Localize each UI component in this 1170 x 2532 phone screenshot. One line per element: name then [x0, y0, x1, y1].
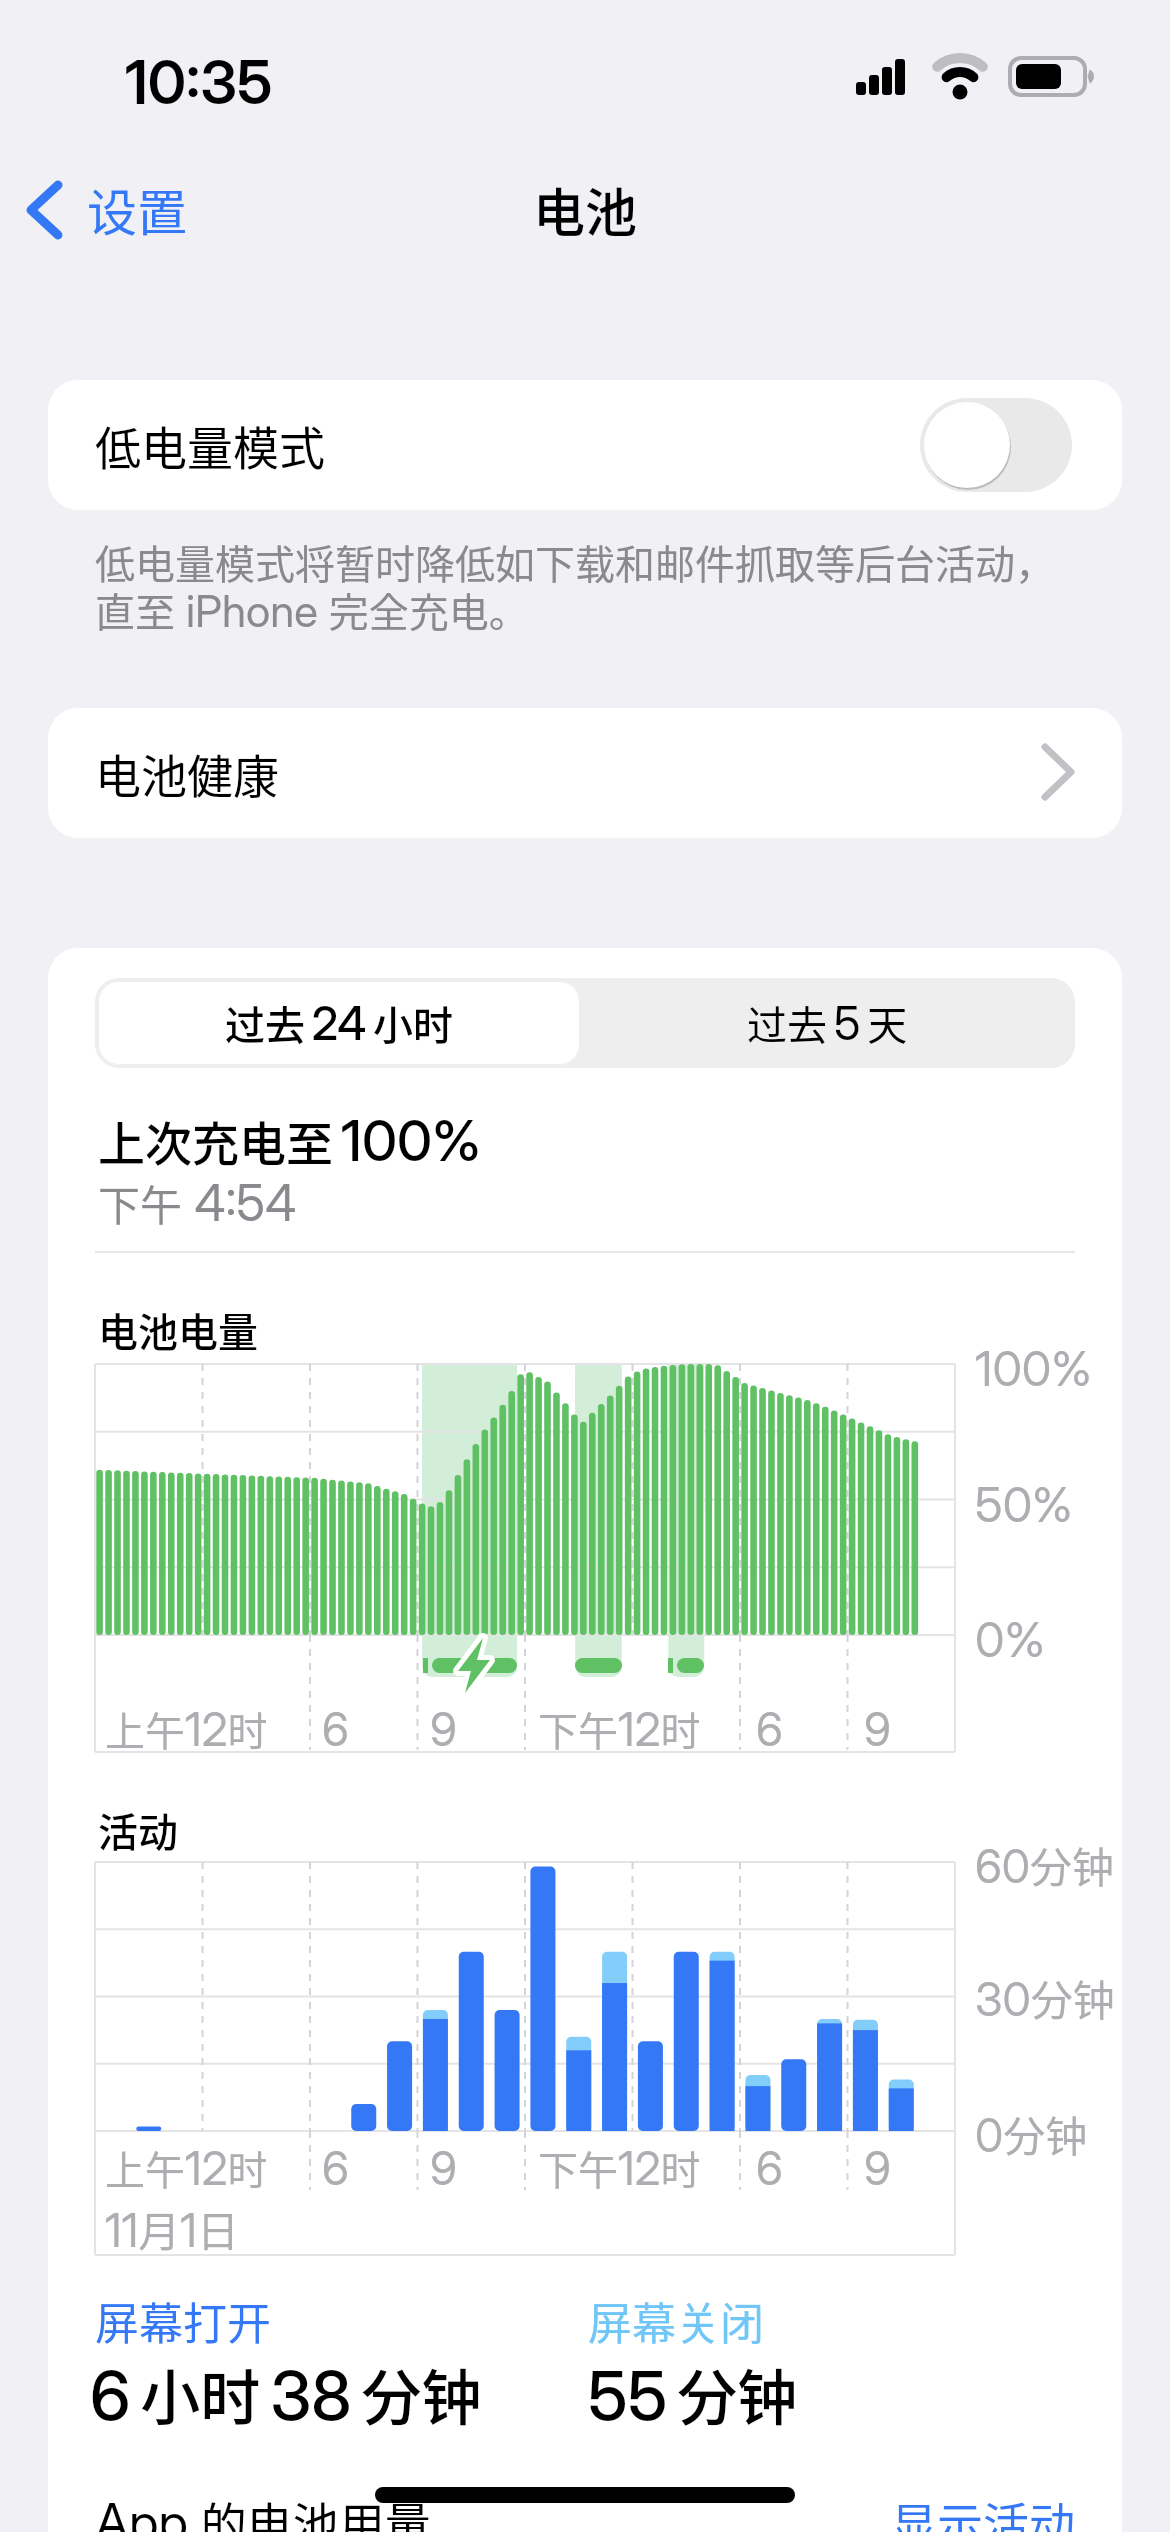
staticText: 下午 4:54 [98, 1172, 297, 1233]
staticText: 6 [756, 2140, 783, 2196]
staticText: 9 [430, 1701, 457, 1757]
button[interactable]: 显示活动 [95, 2486, 1075, 2532]
staticText: 上午12时 [105, 1700, 268, 1758]
staticText: 30分钟 [975, 1967, 1115, 2028]
staticText: 10:35 [125, 46, 273, 106]
button[interactable]: 设置 [20, 172, 210, 244]
button[interactable]: 电池健康 [48, 708, 1122, 838]
staticText: 显示活动 [891, 2488, 1075, 2532]
staticText: 下午12时 [538, 2139, 701, 2197]
staticText: 下午12时 [538, 1700, 701, 1758]
staticText: 电池 [533, 172, 638, 244]
staticText: 9 [430, 2140, 457, 2196]
staticText: 6 [756, 1701, 783, 1757]
staticText: 0% [975, 1610, 1045, 1668]
staticText: 活动 [98, 1801, 178, 1859]
staticText: 6 小时 38 分钟 [90, 2350, 482, 2430]
staticText: 过去 5 天 [747, 994, 908, 1052]
staticText: 50% [975, 1475, 1073, 1533]
staticText: 100% [975, 1339, 1092, 1397]
staticText: 低电量模式将暂时降低如下载和邮件抓取等后台活动， 直至 iPhone 完全充电。 [95, 533, 1055, 639]
staticText: 电池电量 [98, 1301, 258, 1359]
staticText: 11月1日 [105, 2198, 239, 2259]
staticText: 6 [322, 2140, 349, 2196]
button[interactable]: 低电量模式 [48, 380, 1122, 510]
staticText: 电池健康 [95, 740, 279, 807]
staticText: 55 分钟 [588, 2350, 798, 2430]
staticText: 6 [322, 1701, 349, 1757]
staticText: 9 [864, 2140, 891, 2196]
staticText: 上次充电至 100% [98, 1106, 481, 1174]
button[interactable]: 过去 5 天 [580, 981, 1075, 1065]
staticText: 过去 24 小时 [225, 994, 454, 1052]
staticText: 60分钟 [975, 1834, 1115, 1895]
staticText: App 的电池用量 [95, 2488, 431, 2532]
staticText: 屏幕打开 [95, 2289, 271, 2353]
staticText: 9 [864, 1701, 891, 1757]
staticText: 设置 [87, 173, 187, 243]
staticText: 0分钟 [975, 2103, 1088, 2164]
button[interactable]: 过去 24 小时 [98, 981, 580, 1065]
staticText: 屏幕关闭 [588, 2289, 764, 2353]
staticText: 上午12时 [105, 2139, 268, 2197]
staticText: 低电量模式 [95, 412, 325, 479]
